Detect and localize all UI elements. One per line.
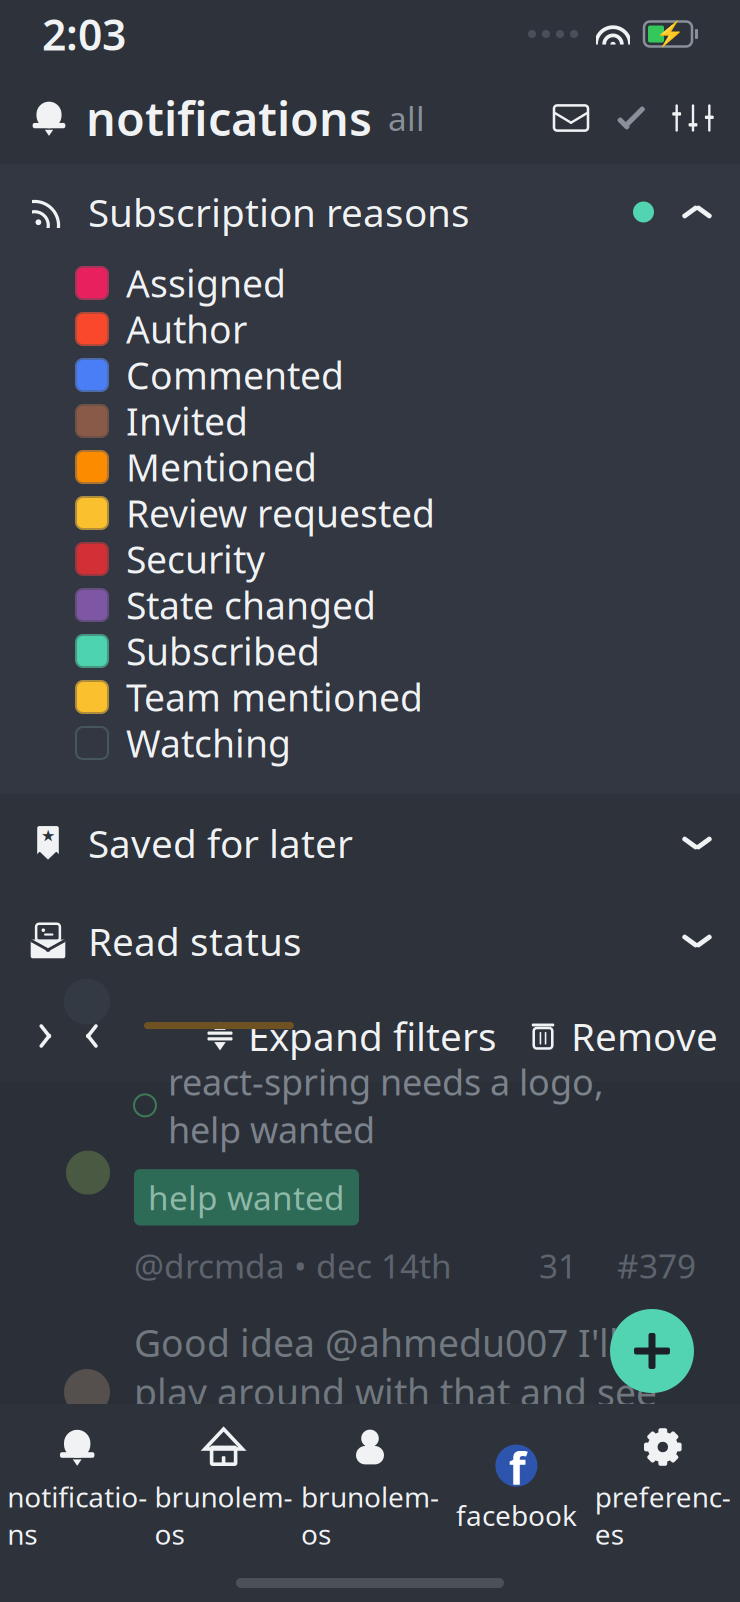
- staticText: 31: [539, 1243, 577, 1288]
- staticText: Review requested: [126, 488, 435, 538]
- button[interactable]: f: [443, 1435, 590, 1544]
- staticText: 2:03: [42, 6, 126, 62]
- staticText: Team mentioned: [126, 672, 423, 722]
- button[interactable]: Filters: [662, 101, 710, 135]
- staticText: all: [388, 96, 425, 140]
- button[interactable]: Mark all as read: [600, 101, 662, 135]
- staticText: Mentioned: [126, 442, 317, 492]
- button[interactable]: Mark as unread: [542, 101, 600, 135]
- staticText: brunolemos: [155, 1478, 293, 1552]
- button[interactable]: Subscription reasons: [0, 164, 740, 260]
- staticText: ★: [41, 827, 55, 845]
- staticText: notifications: [86, 87, 372, 149]
- staticText: help wanted: [148, 1175, 345, 1219]
- button[interactable]: brunolemos: [297, 1416, 443, 1562]
- button[interactable]: brunolemos: [150, 1416, 297, 1562]
- button[interactable]: Assigned: [0, 260, 740, 306]
- staticText: brunolemos: [301, 1478, 439, 1552]
- button[interactable]: Author: [0, 306, 740, 352]
- staticText: Read status: [88, 915, 302, 967]
- button[interactable]: Team mentioned: [0, 674, 740, 720]
- staticText: Security: [126, 534, 265, 584]
- staticText: Assigned: [126, 258, 286, 308]
- staticText: f: [509, 1438, 526, 1497]
- button[interactable]: Previous filter: [22, 1021, 69, 1051]
- button[interactable]: Watching: [0, 720, 740, 766]
- button[interactable]: Next filter: [69, 1021, 115, 1051]
- button[interactable]: State changed: [0, 582, 740, 628]
- button[interactable]: Mentioned: [0, 444, 740, 490]
- button[interactable]: Remove: [497, 1010, 718, 1062]
- staticText: facebook: [456, 1497, 577, 1534]
- button[interactable]: Subscribed: [0, 628, 740, 674]
- button[interactable]: Compose: [610, 1309, 694, 1393]
- staticText: Subscription reasons: [88, 186, 470, 238]
- button[interactable]: notifications: [4, 1416, 150, 1562]
- button[interactable]: Read status: [0, 892, 740, 990]
- button[interactable]: preferences: [590, 1416, 736, 1562]
- staticText: Author: [126, 304, 247, 354]
- staticText: Watching: [126, 718, 291, 768]
- staticText: Good idea @ahmedu007 I'll play around wi…: [134, 1318, 657, 1466]
- button[interactable]: Invited: [0, 398, 740, 444]
- staticText: State changed: [126, 580, 376, 630]
- button[interactable]: Commented: [0, 352, 740, 398]
- staticText: react-spring needs a logo, help wanted: [168, 1058, 604, 1153]
- button[interactable]: Security: [0, 536, 740, 582]
- staticText: preferences: [595, 1478, 731, 1552]
- staticText: @drcmda • dec 14th: [134, 1243, 452, 1288]
- staticText: notifications: [7, 1478, 147, 1552]
- staticText: Saved for later: [88, 817, 353, 869]
- button[interactable]: Expand filters: [204, 1010, 497, 1062]
- staticText: Commented: [126, 350, 344, 400]
- button[interactable]: ★: [0, 794, 740, 892]
- staticText: ⚡: [655, 20, 685, 48]
- staticText: #379: [617, 1243, 696, 1288]
- staticText: Remove: [571, 1010, 718, 1062]
- staticText: Expand filters: [248, 1010, 497, 1062]
- button[interactable]: Review requested: [0, 490, 740, 536]
- staticText: Subscribed: [126, 626, 320, 676]
- staticText: Invited: [126, 396, 248, 446]
